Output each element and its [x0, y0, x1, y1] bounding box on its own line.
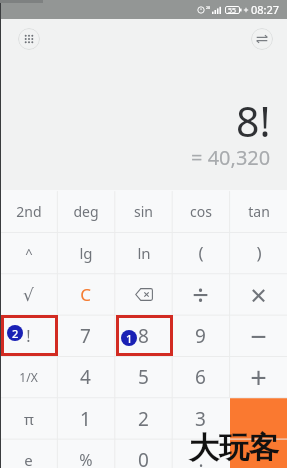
staticText: 7: [80, 323, 91, 349]
button[interactable]: !: [0, 315, 57, 356]
button[interactable]: +: [230, 356, 287, 397]
staticText: 1: [126, 331, 133, 346]
staticText: 1: [80, 406, 91, 432]
button[interactable]: 5: [115, 356, 172, 397]
staticText: !: [26, 325, 31, 347]
button[interactable]: C: [57, 274, 114, 315]
button[interactable]: lg: [57, 232, 114, 273]
staticText: = 40,320: [191, 144, 271, 171]
staticText: 6: [195, 364, 206, 390]
button[interactable]: 8: [115, 315, 172, 356]
staticText: sin: [134, 202, 153, 221]
staticText: 9: [195, 323, 206, 349]
staticText: tan: [248, 202, 270, 221]
staticText: 3: [195, 406, 206, 432]
staticText: 大玩客: [189, 429, 279, 467]
staticText: %: [79, 449, 93, 468]
staticText: C: [80, 283, 91, 306]
button[interactable]: sin: [115, 191, 172, 232]
button[interactable]: ^: [0, 232, 57, 273]
button[interactable]: Equals: [230, 398, 287, 468]
staticText: 8!: [236, 93, 271, 149]
staticText: √: [23, 285, 34, 305]
button[interactable]: −: [230, 315, 287, 356]
button[interactable]: 2nd: [0, 191, 57, 232]
button[interactable]: ÷: [172, 274, 229, 315]
button[interactable]: 6: [172, 356, 229, 397]
button[interactable]: tan: [230, 191, 287, 232]
staticText: 4: [80, 364, 91, 390]
staticText: 8: [138, 323, 149, 349]
button[interactable]: (: [172, 232, 229, 273]
button[interactable]: 1: [57, 398, 114, 439]
button[interactable]: cos: [172, 191, 229, 232]
staticText: 2: [138, 406, 149, 432]
staticText: −: [250, 316, 267, 355]
button[interactable]: 3: [172, 398, 229, 439]
staticText: .: [198, 447, 204, 468]
staticText: ): [256, 241, 262, 264]
button[interactable]: Backspace: [115, 274, 172, 315]
staticText: ^: [25, 244, 33, 262]
button[interactable]: √: [0, 274, 57, 315]
staticText: 55: [228, 6, 237, 14]
other: Backspace: [115, 274, 172, 315]
staticText: ×: [250, 275, 267, 314]
button[interactable]: 7: [57, 315, 114, 356]
button[interactable]: %: [57, 439, 114, 468]
staticText: 1/X: [19, 369, 38, 385]
button[interactable]: 4: [57, 356, 114, 397]
button[interactable]: .: [172, 439, 229, 468]
staticText: e: [24, 450, 33, 468]
button[interactable]: 2: [115, 398, 172, 439]
staticText: ÷: [192, 275, 209, 314]
button[interactable]: π: [0, 398, 57, 439]
staticText: 2: [12, 326, 19, 341]
button[interactable]: 1/X: [0, 356, 57, 397]
button[interactable]: Keypad modes: [18, 28, 40, 50]
staticText: +: [250, 357, 267, 396]
staticText: 0: [138, 447, 149, 468]
staticText: 2nd: [16, 202, 42, 221]
button[interactable]: ln: [115, 232, 172, 273]
staticText: lg: [79, 243, 93, 263]
button[interactable]: ×: [230, 274, 287, 315]
button[interactable]: e: [0, 439, 57, 468]
button[interactable]: 9: [172, 315, 229, 356]
staticText: ln: [137, 243, 151, 263]
staticText: (: [198, 241, 204, 264]
button[interactable]: ): [230, 232, 287, 273]
button[interactable]: 0: [115, 439, 172, 468]
staticText: cos: [190, 202, 212, 221]
staticText: π: [24, 409, 34, 429]
staticText: 08:27: [251, 2, 280, 17]
staticText: deg: [73, 202, 99, 221]
staticText: ²⁰: [206, 6, 211, 14]
staticText: 5: [138, 364, 149, 390]
button[interactable]: Switch calculator: [251, 28, 273, 50]
button[interactable]: deg: [57, 191, 114, 232]
